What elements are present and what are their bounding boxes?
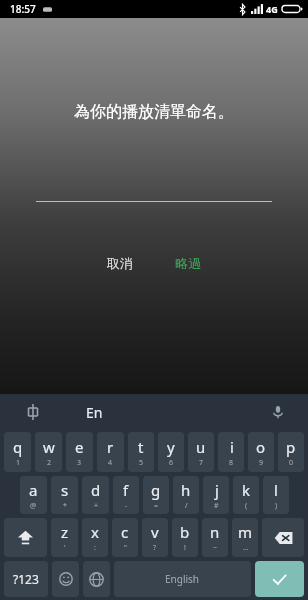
staticText: @: [30, 501, 37, 511]
staticText: 7: [199, 458, 204, 468]
staticText: En: [86, 403, 103, 422]
button[interactable]: p: [278, 432, 304, 472]
button[interactable]: w: [35, 432, 62, 472]
staticText: 4: [108, 458, 113, 468]
staticText: w: [43, 437, 55, 457]
staticText: m: [238, 522, 253, 542]
staticText: 9: [259, 458, 264, 468]
staticText: 4G: [266, 3, 278, 15]
staticText: r: [107, 437, 114, 457]
button[interactable]: v: [142, 518, 168, 557]
staticText: 8: [229, 458, 234, 468]
button[interactable]: t: [128, 432, 154, 472]
staticText: ?: [153, 543, 157, 553]
button[interactable]: c: [112, 518, 138, 557]
staticText: 0: [289, 458, 294, 468]
button[interactable]: o: [248, 432, 274, 472]
staticText: ): [275, 501, 278, 511]
staticText: ": [124, 543, 127, 553]
staticText: l: [274, 480, 278, 500]
staticText: h: [181, 480, 191, 500]
button[interactable]: u: [188, 432, 214, 472]
staticText: i: [230, 437, 234, 457]
staticText: p: [286, 437, 296, 457]
staticText: x: [91, 522, 99, 542]
button[interactable]: j: [203, 476, 229, 514]
button[interactable]: r: [97, 432, 124, 472]
button[interactable]: 取消: [97, 249, 143, 277]
button[interactable]: y: [158, 432, 184, 472]
staticText: *: [63, 501, 67, 511]
button[interactable]: i: [218, 432, 244, 472]
button[interactable]: a: [20, 476, 47, 514]
button[interactable]: h: [173, 476, 199, 514]
button[interactable]: Chinese input: [20, 399, 46, 425]
button[interactable]: ?123: [4, 561, 48, 597]
staticText: /: [185, 501, 188, 511]
staticText: u: [196, 437, 206, 457]
staticText: o: [256, 437, 266, 457]
button[interactable]: k: [233, 476, 259, 514]
staticText: ~: [213, 543, 218, 553]
button[interactable]: g: [143, 476, 169, 514]
button[interactable]: s: [51, 476, 78, 514]
staticText: 18:57: [10, 2, 36, 16]
staticText: q: [13, 437, 23, 457]
staticText: +: [94, 501, 99, 511]
staticText: s: [61, 480, 69, 500]
staticText: e: [75, 437, 84, 457]
staticText: a: [29, 480, 38, 500]
staticText: 3: [77, 458, 82, 468]
button[interactable]: f: [113, 476, 139, 514]
button[interactable]: q: [4, 432, 31, 472]
button[interactable]: m: [232, 518, 258, 557]
staticText: c: [121, 522, 129, 542]
staticText: -: [125, 501, 128, 511]
staticText: ?123: [13, 571, 39, 587]
staticText: n: [210, 522, 220, 542]
staticText: f: [123, 480, 129, 500]
button[interactable]: Backspace: [262, 518, 304, 557]
staticText: t: [138, 437, 144, 457]
button[interactable]: Emoji: [52, 561, 79, 597]
button[interactable]: d: [82, 476, 109, 514]
staticText: g: [151, 480, 161, 500]
button[interactable]: Enter: [255, 561, 304, 597]
button[interactable]: English: [114, 561, 251, 597]
button[interactable]: l: [263, 476, 289, 514]
staticText: 2: [47, 458, 52, 468]
staticText: 5: [139, 458, 144, 468]
staticText: #: [214, 501, 219, 511]
staticText: y: [167, 437, 175, 457]
staticText: !: [184, 543, 186, 553]
button[interactable]: Change language: [83, 561, 110, 597]
staticText: 1: [16, 458, 21, 468]
staticText: v: [151, 522, 159, 542]
button[interactable]: n: [202, 518, 228, 557]
staticText: k: [242, 480, 251, 500]
staticText: :: [94, 543, 96, 553]
staticText: 6: [169, 458, 174, 468]
button[interactable]: Voice input: [266, 400, 290, 424]
button[interactable]: 略過: [165, 249, 211, 277]
staticText: d: [91, 480, 101, 500]
staticText: ': [64, 543, 66, 553]
staticText: =: [154, 501, 159, 511]
staticText: j: [215, 480, 219, 500]
staticText: English: [165, 572, 200, 586]
staticText: …: [243, 543, 249, 553]
staticText: 略過: [175, 255, 201, 271]
staticText: (: [245, 501, 248, 511]
button[interactable]: e: [66, 432, 93, 472]
button[interactable]: Shift: [4, 518, 47, 557]
button[interactable]: z: [51, 518, 78, 557]
staticText: z: [61, 522, 69, 542]
button[interactable]: b: [172, 518, 198, 557]
button[interactable]: x: [82, 518, 108, 557]
staticText: 取消: [107, 255, 133, 271]
staticText: b: [180, 522, 190, 542]
staticText: 為你的播放清單命名。: [74, 102, 234, 122]
